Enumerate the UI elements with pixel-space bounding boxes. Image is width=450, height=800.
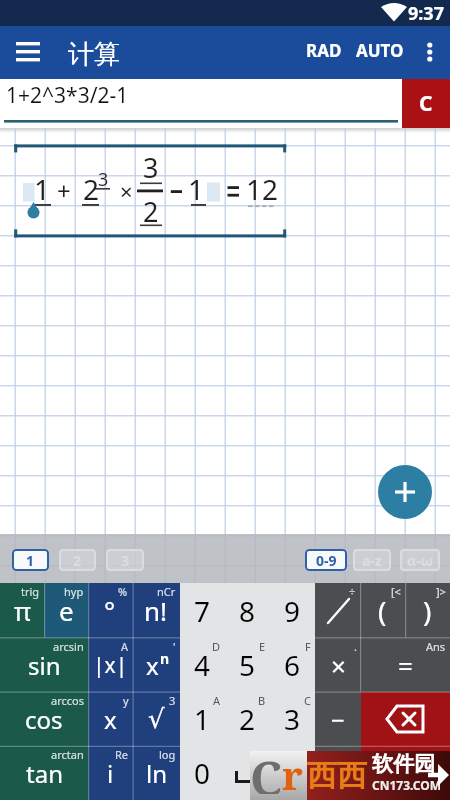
button[interactable] [270,746,315,800]
staticText: 2 [83,170,100,208]
button[interactable]: 0 [180,746,225,800]
button[interactable]: a-z [353,549,391,571]
staticText: A [121,639,129,654]
button[interactable]: log [133,746,180,800]
button[interactable]: 1 [12,549,49,571]
staticText: 3 [284,700,301,738]
button[interactable]: trig [0,583,44,638]
staticText: sin [28,649,61,682]
staticText: = [398,648,413,683]
button[interactable] [361,692,450,746]
staticText: 3 [143,149,159,186]
staticText: r [282,747,303,796]
button[interactable] [225,746,270,800]
staticText: nCr [157,584,176,599]
button[interactable]: − [315,692,361,746]
staticText: ( [378,592,387,630]
button[interactable]: F [270,638,315,692]
staticText: arcsin [53,639,84,654]
button[interactable]: 2 [59,549,96,571]
staticText: 7 [194,592,211,630]
staticText: 1 [26,551,35,570]
staticText: Ans [426,639,446,654]
button[interactable]: Ans [361,638,450,692]
staticText: 1 [188,170,205,208]
button[interactable]: [< [360,583,405,638]
staticText: F [305,639,311,654]
button[interactable]: 0-9 [305,549,347,571]
button[interactable]: AUTO [354,33,406,67]
staticText: × [120,176,133,206]
button[interactable]: D [180,638,225,692]
staticText: log [159,747,176,762]
button[interactable]: ÷ [315,583,360,638]
staticText: 2 [239,700,256,738]
button[interactable]: hyp [44,583,88,638]
button[interactable]: arccos [0,692,88,746]
staticText: 1+2^3*3/2-1 [6,81,129,110]
staticText: % [118,584,128,599]
staticText: x [146,649,159,682]
staticText: 4 [194,646,211,684]
button[interactable]: nCr [132,583,180,638]
button[interactable]: Re [88,746,133,800]
button[interactable]: 1+2^3*3/2-1 [0,79,450,128]
staticText: C [419,89,433,118]
button[interactable] [315,746,361,800]
staticText: − [331,703,345,736]
button[interactable]: E [225,638,270,692]
staticText: trig [21,584,40,599]
button[interactable]: 9 [270,583,315,638]
button[interactable]: A [180,692,225,746]
staticText: e [59,593,74,628]
staticText: CN173.COM [372,777,442,793]
button[interactable]: y [88,692,133,746]
button[interactable]: arcsin [0,638,88,692]
staticText: ]> [436,584,446,599]
staticText: cos [25,703,63,736]
button[interactable]: ' [133,638,180,692]
staticText: C [250,745,283,794]
button[interactable]: RAD [298,33,350,67]
staticText: n! [144,593,168,628]
staticText: 2 [73,551,82,570]
staticText: AUTO [356,39,404,62]
staticText: a-z [362,551,382,570]
button[interactable]: B [225,692,270,746]
staticText: √ [148,704,165,734]
button[interactable]: 3 [106,549,144,571]
button[interactable] [361,746,450,800]
button[interactable] [414,36,444,70]
staticText: D [212,639,221,654]
staticText: Re [115,747,129,762]
staticText: i [107,757,114,790]
button[interactable]: α-ω [400,549,440,571]
staticText: ) [423,592,432,630]
staticText: α-ω [407,551,433,570]
button[interactable]: 7 [180,583,225,638]
staticText: RAD [306,39,342,62]
staticText: 9:37 [408,1,444,26]
button[interactable] [378,465,432,519]
button[interactable]: 3 [133,692,180,746]
button[interactable]: . [315,638,361,692]
button[interactable]: % [88,583,132,638]
staticText: 12 [246,170,279,208]
staticText: 软件园 [372,751,435,777]
staticText: C [304,693,311,708]
staticText: 2 [143,193,159,230]
staticText: ' [173,639,176,654]
button[interactable]: C [270,692,315,746]
staticText: arctan [51,747,84,762]
button[interactable]: 8 [225,583,270,638]
staticText: ÷ [349,584,356,599]
staticText: B [258,693,266,708]
button[interactable]: A [88,638,133,692]
button[interactable]: arctan [0,746,88,800]
button[interactable]: ]> [405,583,450,638]
staticText: π [14,593,31,628]
staticText: 3 [121,551,130,570]
button[interactable]: C [402,79,450,128]
button[interactable] [8,38,48,70]
staticText: x [104,703,117,736]
